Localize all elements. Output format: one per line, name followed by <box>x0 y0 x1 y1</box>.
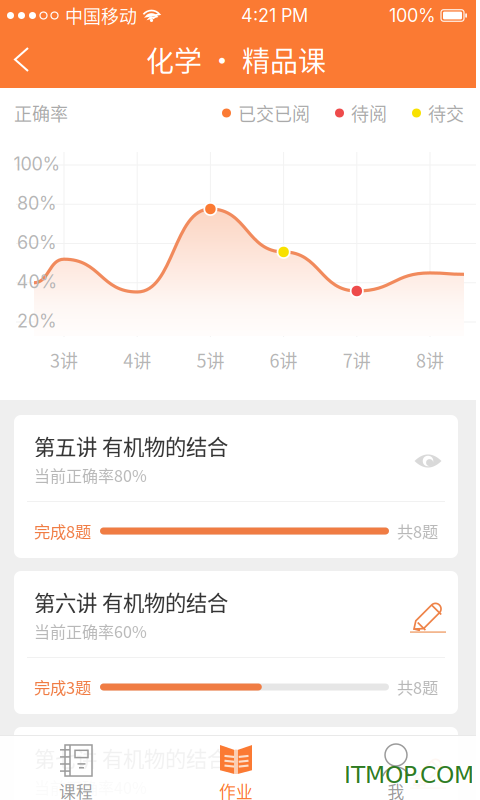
staticText: 已交已阅 <box>238 100 310 126</box>
staticText: 7讲 <box>343 347 371 373</box>
staticText: 100% <box>13 153 60 175</box>
staticText: 第五讲 有机物的结合 <box>34 431 228 461</box>
staticText: 我 <box>387 779 404 800</box>
staticText: 8讲 <box>416 347 444 373</box>
staticText: 6讲 <box>270 347 298 373</box>
staticText: 5讲 <box>196 347 224 373</box>
staticText: 100% <box>389 5 436 26</box>
button[interactable]: Back <box>0 35 46 84</box>
staticText: 正确率 <box>14 100 68 126</box>
staticText: 共8题 <box>397 519 438 543</box>
button[interactable]: 课程 <box>0 735 156 800</box>
staticText: 4讲 <box>123 347 151 373</box>
staticText: 完成8题 <box>34 519 91 543</box>
staticText: 待交 <box>428 100 464 126</box>
staticText: 当前正确率60% <box>34 619 147 643</box>
staticText: 当前正确率80% <box>34 463 147 487</box>
button[interactable]: 我 <box>316 735 476 800</box>
button[interactable]: 作业 <box>156 735 316 800</box>
staticText: 共8题 <box>397 675 438 699</box>
staticText: 化学 · 精品课 <box>146 39 326 80</box>
staticText: 3讲 <box>50 347 78 373</box>
button[interactable]: 第五讲 有机物的结合 <box>14 415 458 558</box>
staticText: 80% <box>17 192 57 214</box>
staticText: ITMOP.COM <box>344 761 474 789</box>
staticText: 第七讲 有机物的结合 <box>34 743 228 773</box>
staticText: 第六讲 有机物的结合 <box>34 587 228 617</box>
button[interactable]: 第七讲 有机物的结合 <box>14 727 458 800</box>
staticText: 中国移动 <box>65 2 137 29</box>
staticText: 40% <box>16 271 57 293</box>
staticText: 20% <box>17 310 57 332</box>
staticText: 课程 <box>59 779 93 800</box>
staticText: 当前正确率40% <box>34 775 147 799</box>
staticText: 60% <box>17 232 57 253</box>
staticText: 作业 <box>219 779 253 800</box>
staticText: 4:21 PM <box>241 5 308 26</box>
staticText: 完成3题 <box>34 675 91 699</box>
staticText: 待阅 <box>351 100 387 126</box>
button[interactable]: 第六讲 有机物的结合 <box>14 571 458 714</box>
